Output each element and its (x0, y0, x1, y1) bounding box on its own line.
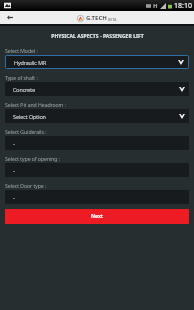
staticText: Select Option (13, 113, 46, 120)
staticText: Select Door type : (5, 182, 47, 189)
staticText: H (153, 2, 158, 10)
staticText: Concrete (13, 86, 36, 93)
button[interactable]: Back (3, 11, 16, 24)
staticText: Next (91, 213, 104, 220)
staticText: Select Pit and Headroom : (5, 101, 66, 108)
staticText: Hydraulic MR (14, 59, 47, 66)
staticText: Select Model : (5, 47, 38, 54)
staticText: - (13, 140, 15, 147)
button[interactable]: Next (5, 209, 189, 224)
staticText: G.TECH (86, 14, 107, 22)
staticText: - (13, 194, 15, 201)
staticText: - (13, 167, 15, 174)
staticText: 18:10 (174, 1, 192, 11)
staticText: PHYSICAL ASPECTS - PASSENGER LIFT (51, 33, 144, 40)
staticText: Select Guiderails : (5, 128, 47, 135)
staticText: Select type of opening : (5, 155, 61, 162)
staticText: BETA (108, 17, 117, 22)
button[interactable]: Hydraulic MR (6, 56, 188, 68)
button[interactable]: Concrete (5, 82, 189, 96)
button[interactable]: Select Option (5, 109, 189, 123)
staticText: Type of shaft : (5, 74, 38, 81)
